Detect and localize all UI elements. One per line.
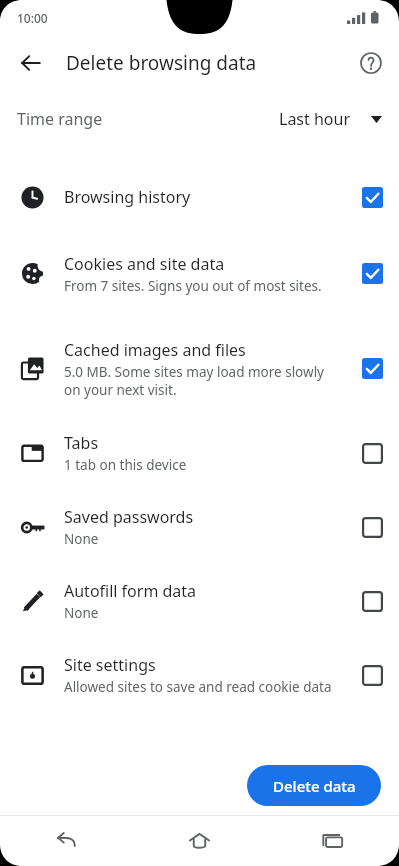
button[interactable]: Browsing history checkbox <box>345 168 399 226</box>
staticText: From 7 sites. Signs you out of most site… <box>64 277 322 295</box>
button[interactable]: Delete data <box>247 765 381 806</box>
button[interactable]: Site settings <box>0 638 399 712</box>
button[interactable]: Cached images and files <box>0 321 399 416</box>
button[interactable]: Autofill form data <box>0 564 399 638</box>
staticText: Cookies and site data <box>64 253 225 275</box>
button[interactable]: Recent apps <box>266 816 399 866</box>
staticText: Tabs <box>64 432 99 454</box>
staticText: Delete data <box>273 776 356 796</box>
button[interactable]: Cached images and files checkbox <box>345 321 399 416</box>
staticText: 5.0 MB. Some sites may load more slowly … <box>64 363 335 399</box>
button[interactable]: Time range <box>0 90 399 148</box>
button[interactable]: Tabs checkbox <box>345 416 399 490</box>
staticText: 1 tab on this device <box>64 456 187 474</box>
button[interactable]: Site settings checkbox <box>345 638 399 712</box>
staticText: Saved passwords <box>64 506 194 528</box>
staticText: Last hour <box>279 108 351 130</box>
staticText: None <box>64 604 99 622</box>
staticText: Time range <box>17 108 103 130</box>
button[interactable]: Tabs <box>0 416 399 490</box>
staticText: None <box>64 530 99 548</box>
button[interactable]: Saved passwords checkbox <box>345 490 399 564</box>
button[interactable]: Cookies and site data checkbox <box>345 226 399 321</box>
staticText: Cached images and files <box>64 339 246 361</box>
button[interactable]: Browsing history <box>0 168 399 226</box>
button[interactable]: Help <box>349 41 393 85</box>
staticText: Autofill form data <box>64 580 197 602</box>
staticText: Delete browsing data <box>66 50 257 76</box>
staticText: 10:00 <box>17 10 48 26</box>
button[interactable]: Home <box>133 816 266 866</box>
button[interactable]: Cookies and site data <box>0 226 399 321</box>
button[interactable]: Autofill form data checkbox <box>345 564 399 638</box>
staticText: Site settings <box>64 654 156 676</box>
button[interactable]: Back <box>0 816 133 866</box>
button[interactable]: Saved passwords <box>0 490 399 564</box>
staticText: Browsing history <box>64 186 191 208</box>
button[interactable]: Back <box>9 41 53 85</box>
staticText: Allowed sites to save and read cookie da… <box>64 678 332 696</box>
